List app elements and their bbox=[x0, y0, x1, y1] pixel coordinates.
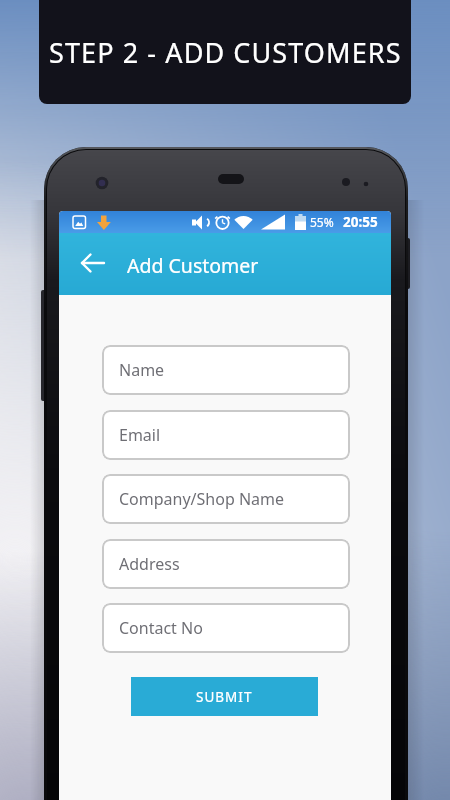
staticText: SUBMIT bbox=[196, 688, 253, 706]
button[interactable]: Name bbox=[102, 345, 350, 395]
staticText: Company/Shop Name bbox=[119, 488, 285, 510]
staticText: 20:55 bbox=[343, 213, 378, 231]
button[interactable]: Email bbox=[102, 410, 350, 460]
staticText: Contact No bbox=[119, 617, 203, 639]
staticText: STEP 2 - ADD CUSTOMERS bbox=[49, 34, 402, 71]
button[interactable]: SUBMIT bbox=[131, 677, 318, 716]
button[interactable]: Contact No bbox=[102, 603, 350, 653]
button[interactable] bbox=[77, 247, 109, 279]
button[interactable]: Company/Shop Name bbox=[102, 474, 350, 524]
button[interactable]: Address bbox=[102, 539, 350, 589]
staticText: Add Customer bbox=[127, 252, 259, 279]
staticText: Address bbox=[119, 553, 180, 575]
staticText: 55% bbox=[310, 214, 334, 230]
staticText: Name bbox=[119, 359, 165, 381]
staticText: Email bbox=[119, 424, 161, 446]
